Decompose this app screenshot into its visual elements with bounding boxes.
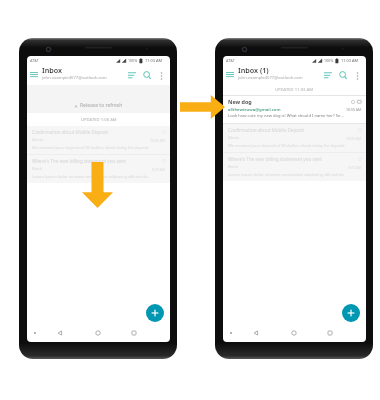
button[interactable]: Back <box>251 328 261 338</box>
staticText: Confirmation about Mobile Deposit <box>32 129 162 135</box>
staticText: Inbox <box>42 65 63 75</box>
button[interactable]: Navigation menu <box>223 68 236 81</box>
button[interactable]: Compose new email <box>342 304 360 322</box>
staticText: AT&T <box>30 58 39 63</box>
staticText: Lorem ipsum dolor sit amet consectetur a… <box>32 174 148 179</box>
button[interactable]: New dog <box>223 96 366 123</box>
staticText: New dog <box>228 98 351 105</box>
button[interactable]: Sort <box>125 69 138 82</box>
staticText: Where's The new billing statement you se… <box>228 156 358 162</box>
button[interactable]: Search <box>337 69 350 82</box>
button[interactable]: Search <box>141 69 154 82</box>
staticText: UPDATED 1:06 AM <box>81 117 117 123</box>
staticText: 100% <box>128 58 138 63</box>
button[interactable]: Notification dot <box>30 328 40 338</box>
staticText: 10:55 AM <box>150 138 166 143</box>
button[interactable]: More options <box>352 70 363 81</box>
button[interactable]: Home <box>93 328 103 338</box>
staticText: Inbox (1) <box>238 65 269 75</box>
staticText: 10:55 AM <box>346 136 362 141</box>
staticText: AT&T <box>226 58 235 63</box>
button[interactable]: Confirmation about Mobile Deposit <box>223 124 366 152</box>
staticText: We received your deposit of 20 dollars c… <box>32 145 149 150</box>
staticText: Confirmation about Mobile Deposit <box>228 127 358 133</box>
staticText: UPDATED 11:03 AM <box>275 87 314 93</box>
button[interactable]: Recent apps <box>129 328 139 338</box>
button[interactable]: Navigation menu <box>27 68 40 81</box>
button[interactable]: Compose new email <box>146 304 164 322</box>
staticText: Lorem ipsum dolor sit amet consectetur a… <box>228 172 344 177</box>
staticText: Bank <box>32 166 152 172</box>
staticText: john.example4577@outlook.com <box>238 75 303 81</box>
button[interactable]: More options <box>156 70 167 81</box>
button[interactable]: Recent apps <box>325 328 335 338</box>
button[interactable]: Home <box>289 328 299 338</box>
button[interactable]: Notification dot <box>226 328 236 338</box>
staticText: Look how cute my new dog is! What should… <box>228 113 344 119</box>
staticText: 10:55 AM <box>346 107 362 112</box>
staticText: john.example4577@outlook.com <box>42 75 107 81</box>
staticText: We received your deposit of 20 dollars c… <box>228 143 345 148</box>
staticText: 11:03 AM <box>341 58 358 63</box>
button[interactable]: Where's The new billing statement you se… <box>27 155 170 183</box>
staticText: 100% <box>324 58 334 63</box>
staticText: 9:31 AM <box>152 167 166 172</box>
button[interactable]: Back <box>55 328 65 338</box>
staticText: allthewieuwa@gmail.com <box>228 106 346 112</box>
staticText: Release to refresh <box>80 102 123 109</box>
staticText: 9:31 AM <box>348 165 362 170</box>
button[interactable]: Confirmation about Mobile Deposit <box>27 126 170 154</box>
staticText: Where's The new billing statement you se… <box>32 158 162 164</box>
button[interactable]: Sort <box>321 69 334 82</box>
button[interactable]: Where's The new billing statement you se… <box>223 153 366 181</box>
staticText: 11:03 AM <box>145 58 162 63</box>
